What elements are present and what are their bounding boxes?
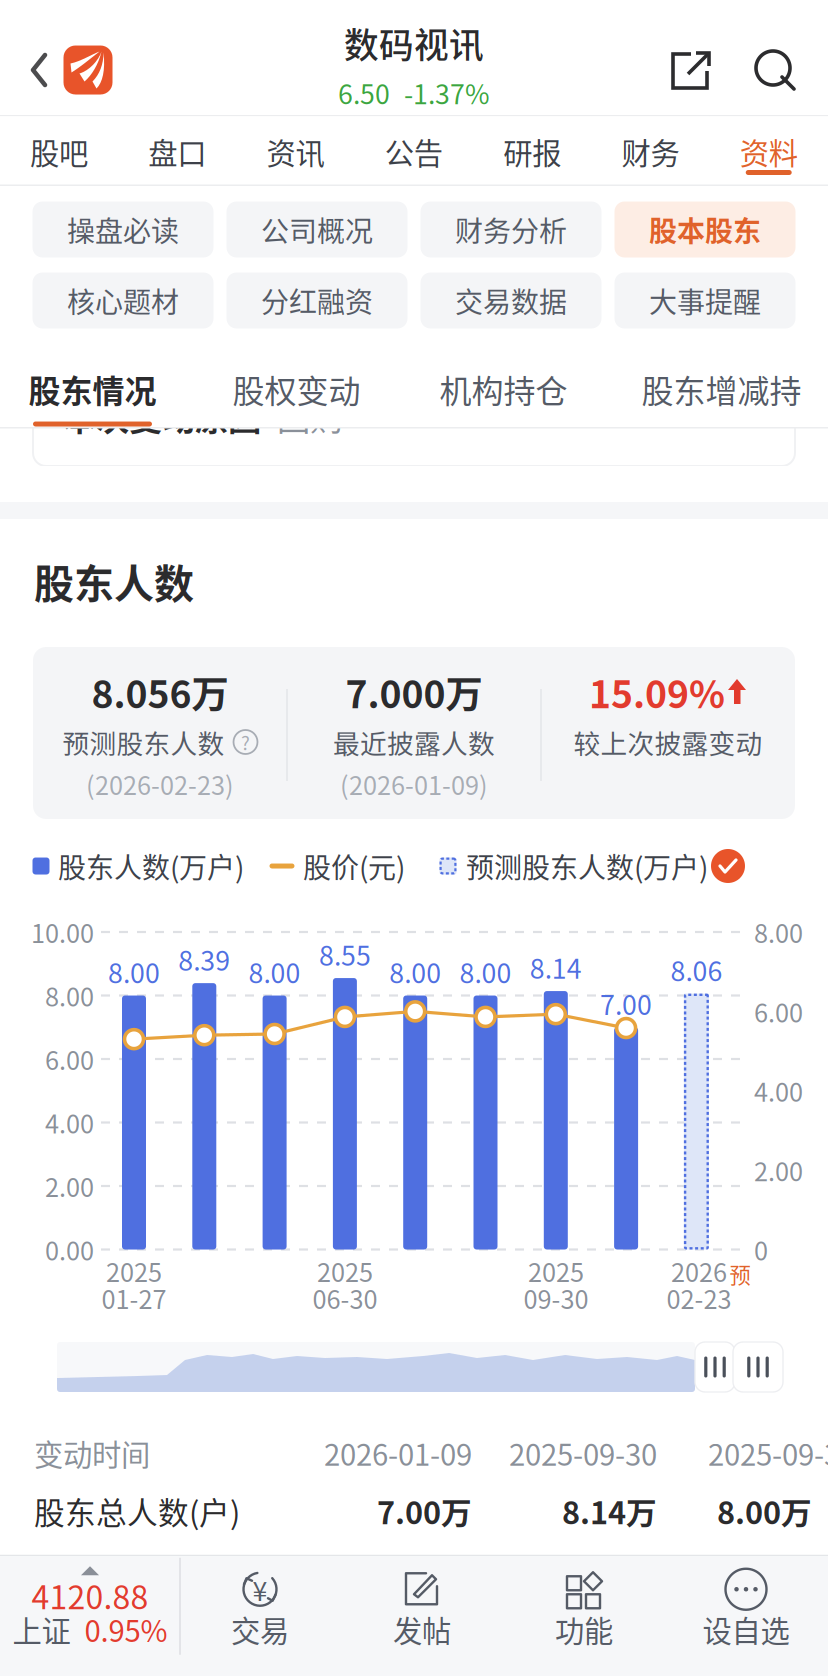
button[interactable]: 机构持仓 (430, 345, 577, 427)
staticText: 发帖 (393, 1608, 451, 1650)
staticText: 资料 (740, 130, 798, 173)
staticText: 2025-09-30 (509, 1432, 657, 1474)
staticText: 本次变动原因 (63, 392, 261, 440)
staticText: 2025-09-30 (708, 1432, 828, 1474)
staticText: 2026-01-09 (324, 1432, 472, 1474)
staticText: ? (241, 728, 250, 755)
button[interactable]: 分红融资 (226, 272, 407, 328)
button[interactable]: 股本股东 (614, 201, 795, 257)
staticText: 09-30 (523, 1280, 588, 1316)
staticText: 最近披露人数 (333, 723, 495, 761)
staticText: 股权变动 (232, 366, 360, 412)
button[interactable]: 左滑块 (695, 1342, 735, 1392)
staticText: 0.95% (84, 1608, 167, 1650)
staticText: 数码视讯 (344, 18, 484, 68)
button[interactable]: 大事提醒 (614, 272, 795, 328)
staticText: 2.00 (45, 1168, 94, 1204)
staticText: 股东人数(万户) (58, 846, 244, 886)
button[interactable]: 股权变动 (223, 345, 370, 427)
staticText: 7.00 (600, 984, 652, 1022)
button[interactable]: 设自选 (666, 1556, 826, 1676)
staticText: 8.14万 (562, 1489, 657, 1533)
button[interactable]: 返回 (0, 0, 132, 115)
staticText: 资讯 (267, 130, 325, 173)
staticText: 股东人数 (34, 552, 194, 610)
staticText: 财务 (621, 130, 679, 173)
button[interactable]: 4120.88 (0, 1556, 180, 1676)
staticText: 股吧 (30, 130, 88, 173)
button[interactable]: 财务分析 (420, 201, 601, 257)
staticText: 01-27 (101, 1280, 166, 1316)
staticText: ¥ (252, 1570, 267, 1608)
staticText: 上证 (12, 1608, 70, 1650)
button[interactable]: 核心题材 (32, 272, 213, 328)
button[interactable]: 股吧 (0, 116, 118, 184)
staticText: 8.00 (45, 977, 94, 1014)
staticText: 10.00 (31, 914, 94, 950)
staticText: 8.00 (249, 952, 301, 991)
button[interactable]: 操盘必读 (32, 201, 213, 257)
staticText: (2026-01-09) (340, 766, 488, 802)
button[interactable]: ¥ (180, 1556, 340, 1676)
staticText: 大事提醒 (649, 280, 761, 321)
button[interactable]: 资料 (710, 116, 828, 184)
staticText: 8.00 (389, 952, 441, 991)
button[interactable]: 右滑块 (733, 1342, 783, 1392)
staticText: 股东情况 (28, 366, 156, 412)
staticText: 8.14 (530, 948, 582, 986)
staticText: 预测股东人数(万户) (466, 846, 708, 886)
staticText: 预 (729, 1259, 750, 1289)
staticText: 0 (754, 1231, 768, 1268)
staticText: 8.00万 (717, 1489, 812, 1533)
staticText: 机构持仓 (439, 366, 567, 412)
staticText: 公司概况 (261, 209, 373, 250)
staticText: 研报 (503, 130, 561, 173)
staticText: 4.00 (45, 1104, 94, 1141)
staticText: 8.06 (670, 950, 722, 989)
staticText: 15.09% (589, 665, 725, 719)
staticText: 02-23 (666, 1280, 731, 1316)
staticText: 交易 (231, 1608, 289, 1650)
staticText: 06-30 (312, 1280, 377, 1316)
staticText: -1.37% (404, 73, 490, 112)
staticText: 2025 (317, 1253, 373, 1289)
button[interactable]: 发帖 (342, 1556, 502, 1676)
button[interactable]: 股东情况 (19, 345, 166, 427)
staticText: 7.000万 (345, 665, 482, 719)
button[interactable]: 功能 (504, 1556, 664, 1676)
staticText: 2.00 (754, 1152, 803, 1188)
staticText: 财务分析 (455, 209, 567, 250)
staticText: 股本股东 (649, 209, 761, 250)
staticText: 8.00 (754, 914, 803, 950)
staticText: 2026 (671, 1253, 727, 1289)
staticText: 8.00 (108, 952, 160, 991)
staticText: 6.00 (754, 993, 803, 1030)
staticText: 6.50 (338, 73, 390, 112)
staticText: 8.39 (178, 940, 230, 978)
staticText: 公告 (385, 130, 443, 173)
staticText: 股东总人数(户) (34, 1489, 240, 1533)
button[interactable]: 公司概况 (226, 201, 407, 257)
staticText: 回购 (277, 392, 343, 440)
button[interactable]: 分享 (655, 21, 727, 121)
staticText: 股价(元) (303, 846, 405, 886)
staticText: 8.00 (459, 952, 511, 991)
staticText: 设自选 (702, 1608, 789, 1650)
staticText: 股东增减持 (641, 366, 801, 412)
staticText: 8.056万 (91, 665, 228, 719)
button[interactable]: 公告 (355, 116, 473, 184)
staticText: 预测股东人数 (62, 723, 224, 761)
button[interactable]: 财务 (591, 116, 710, 184)
staticText: 交易数据 (455, 280, 567, 321)
button[interactable]: 股东增减持 (633, 345, 810, 427)
button[interactable]: 全选图例 (707, 845, 749, 887)
button[interactable]: 研报 (473, 116, 591, 184)
button[interactable]: 交易数据 (420, 272, 601, 328)
staticText: 核心题材 (67, 280, 179, 321)
staticText: 8.55 (319, 935, 371, 973)
button[interactable]: 资讯 (237, 116, 355, 184)
button[interactable]: 盘口 (118, 116, 237, 184)
staticText: 4120.88 (31, 1572, 148, 1618)
staticText: 2025 (106, 1253, 162, 1289)
button[interactable]: 搜索 (740, 21, 812, 121)
